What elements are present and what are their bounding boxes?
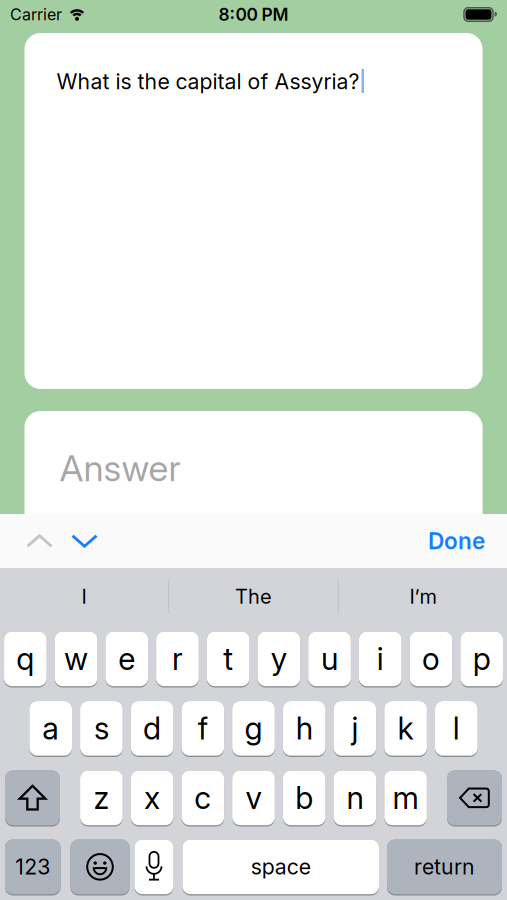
staticText: r [172,641,183,677]
staticText: n [346,780,363,816]
button[interactable] [70,839,129,895]
button[interactable]: c [181,770,224,826]
button[interactable]: s [80,701,123,757]
button[interactable] [17,514,62,568]
button[interactable]: o [410,631,452,687]
staticText: m [393,780,419,816]
button[interactable]: g [232,701,275,757]
button[interactable]: e [105,631,148,687]
button[interactable]: l [435,701,478,757]
button[interactable]: x [131,770,173,826]
button[interactable]: 123 [5,839,60,895]
button[interactable]: i [359,631,401,687]
button[interactable]: v [232,770,275,826]
staticText: k [398,710,414,746]
button[interactable]: I’m [339,564,507,628]
button[interactable]: k [384,701,427,757]
button[interactable]: t [207,631,249,687]
staticText: What is the capital of Assyria? [56,69,359,94]
staticText: j [351,710,358,746]
button[interactable]: What is the capital of Assyria? [24,33,482,389]
staticText: v [245,780,261,816]
staticText: I’m [409,585,436,608]
button[interactable]: y [257,631,300,687]
button[interactable]: m [384,770,427,826]
staticText: h [296,710,313,746]
staticText: z [93,780,109,816]
staticText: Answer [59,447,180,489]
staticText: b [295,780,313,816]
staticText: Done [428,528,485,554]
staticText: Carrier [10,5,62,24]
button[interactable]: z [80,770,123,826]
staticText: g [244,710,262,746]
staticText: s [94,710,109,746]
button[interactable]: return [387,839,502,895]
button[interactable] [62,514,107,568]
button[interactable]: I [0,564,168,628]
button[interactable]: j [334,701,376,757]
button[interactable] [447,770,502,826]
button[interactable]: The [169,564,338,628]
button[interactable] [5,770,60,826]
staticText: q [16,641,34,677]
staticText: f [198,710,208,746]
staticText: l [453,710,460,746]
button[interactable]: space [182,839,379,895]
staticText: return [414,854,475,879]
button[interactable]: b [283,770,325,826]
button[interactable]: n [334,770,376,826]
button[interactable]: p [460,631,503,687]
button[interactable]: f [181,701,224,757]
button[interactable]: w [55,631,97,687]
staticText: c [194,780,211,816]
staticText: i [377,641,384,677]
staticText: d [143,710,161,746]
button[interactable]: d [131,701,173,757]
staticText: e [118,641,135,677]
staticText: y [271,641,287,677]
staticText: space [251,854,311,879]
staticText: The [235,585,272,608]
button[interactable]: a [29,701,72,757]
staticText: I [82,585,87,608]
staticText: w [64,641,88,677]
staticText: 123 [15,854,50,879]
button[interactable]: h [283,701,325,757]
button[interactable]: q [4,631,47,687]
button[interactable]: u [308,631,351,687]
staticText: a [42,710,59,746]
staticText: u [321,641,338,677]
staticText: x [144,780,160,816]
staticText: o [422,641,440,677]
button[interactable]: Done [428,514,507,568]
staticText: t [223,641,233,677]
button[interactable]: r [156,631,199,687]
staticText: 8:00 PM [218,4,288,25]
button[interactable] [134,839,173,895]
button[interactable]: Answer [24,411,482,571]
staticText: p [473,641,491,677]
